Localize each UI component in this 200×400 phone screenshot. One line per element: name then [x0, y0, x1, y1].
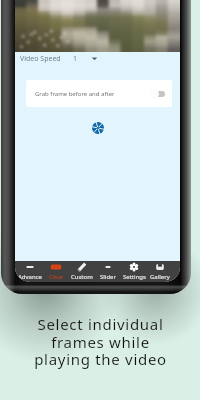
button[interactable]: Slider [95, 261, 121, 282]
button[interactable]: Change speed [91, 55, 98, 62]
button[interactable]: Gallery [147, 261, 173, 282]
staticText: Settings [123, 273, 146, 281]
staticText: 1 [73, 54, 78, 64]
button[interactable]: Capture frame [92, 122, 104, 134]
button[interactable]: Custom [69, 261, 95, 282]
button[interactable]: Clear [43, 261, 69, 282]
button[interactable]: Settings [121, 261, 147, 282]
staticText: Grab frame before and after [35, 90, 115, 98]
button[interactable]: Grab frame before and after [26, 80, 172, 107]
staticText: Gallery [150, 273, 170, 281]
staticText: Advance [18, 273, 42, 281]
button[interactable]: Advance [17, 261, 43, 282]
staticText: Slider [100, 273, 116, 281]
staticText: Custom [71, 273, 93, 281]
staticText: Clear [49, 273, 64, 281]
staticText: Select individual frames while playing t… [34, 314, 167, 369]
staticText: Video Speed [20, 54, 61, 64]
